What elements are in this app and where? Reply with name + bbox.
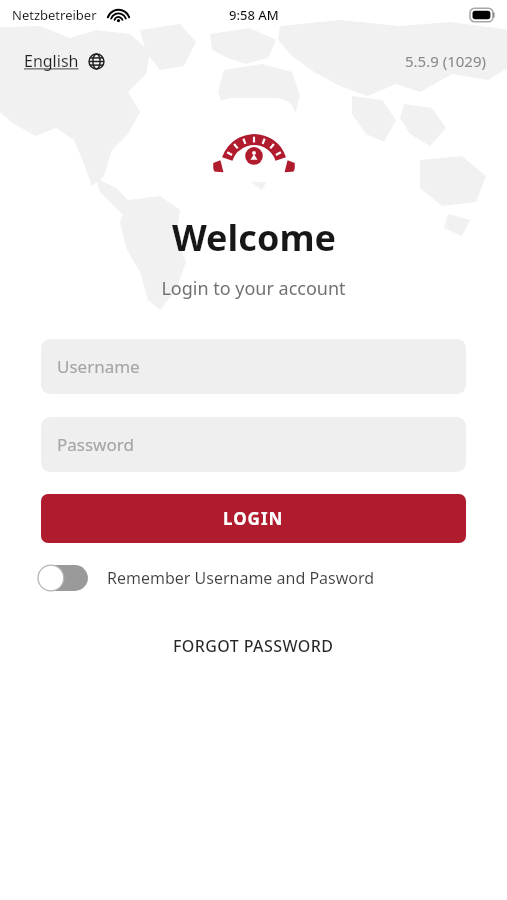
button[interactable]: English: [24, 50, 109, 72]
staticText: 9:58 AM: [229, 6, 279, 24]
staticText: FORGOT PASSWORD: [173, 635, 334, 657]
staticText: Netzbetreiber: [12, 6, 97, 24]
staticText: English: [24, 50, 79, 72]
staticText: Welcome: [172, 213, 336, 262]
button[interactable]: FORGOT PASSWORD: [155, 629, 352, 663]
staticText: Username: [57, 355, 140, 378]
staticText: Login to your account: [161, 276, 346, 301]
button[interactable]: Username: [41, 339, 466, 394]
button[interactable]: Password: [41, 417, 466, 472]
button[interactable]: LOGIN: [41, 494, 466, 543]
staticText: Password: [57, 433, 134, 456]
staticText: Remember Username and Pasword: [107, 567, 375, 589]
button[interactable]: Remember Username and Pasword: [38, 560, 487, 596]
staticText: 5.5.9 (1029): [405, 51, 487, 71]
staticText: LOGIN: [223, 507, 284, 530]
